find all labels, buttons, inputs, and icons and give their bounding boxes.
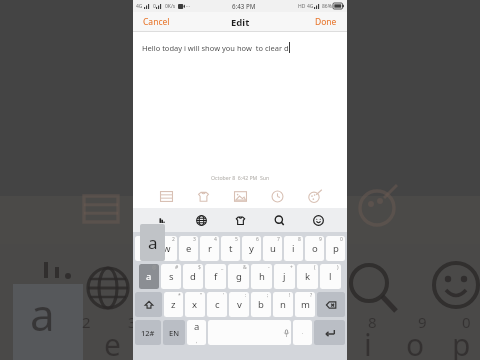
button[interactable]: Search [269,210,289,230]
staticText: a [194,320,200,333]
staticText: @ [152,264,157,271]
button[interactable]: x [185,292,205,317]
staticText: $ [198,264,201,271]
staticText: l [329,270,332,283]
staticText: 2 [172,236,175,243]
button[interactable]: f [205,264,226,289]
button[interactable]: e [179,236,198,261]
staticText: e [104,324,121,360]
staticText: f [214,270,218,283]
staticText: 5 [235,236,238,243]
staticText: z [171,298,176,311]
staticText: t [229,242,233,255]
staticText: + [290,264,293,271]
button[interactable]: Draw [305,187,323,205]
button[interactable]: k [297,264,318,289]
staticText: Hello today i will show you how to clear… [142,43,289,53]
staticText: ) [337,264,339,271]
staticText: x [192,298,198,311]
staticText: * [178,292,181,299]
button[interactable]: z [164,292,183,317]
button[interactable]: j [274,264,295,289]
staticText: ? [310,292,313,299]
staticText: ; [267,292,269,299]
staticText: i [292,242,295,255]
staticText: 7 [277,236,280,243]
staticText: i [364,324,372,360]
staticText: a [30,284,55,344]
button[interactable]: Language [191,210,211,230]
button[interactable]: Backspace [317,292,345,317]
staticText: 1 [150,236,153,243]
staticText: 3 [128,312,137,332]
staticText: 4 [214,236,217,243]
staticText: EN [169,328,179,338]
button[interactable]: 12# [135,320,161,345]
staticText: 9 [319,236,322,243]
button[interactable]: . [293,320,312,345]
staticText: o [406,324,425,360]
button[interactable]: h [251,264,272,289]
staticText: p [333,242,339,255]
button[interactable]: Reminder [268,187,286,205]
button[interactable]: Cancel [139,12,174,32]
button[interactable]: Theme [230,210,250,230]
staticText: j [283,270,286,283]
button[interactable]: Emoji [308,210,328,230]
button[interactable]: Clipboard [152,210,172,230]
button[interactable]: d [183,264,203,289]
staticText: b [258,298,264,311]
staticText: 8 [368,312,377,332]
button[interactable]: n [273,292,293,317]
button[interactable]: Style [194,187,212,205]
button[interactable]: r [200,236,219,261]
button[interactable]: Done [311,12,341,32]
staticText: HD [298,3,306,10]
staticText: 12# [141,328,155,338]
staticText: 9 [418,312,427,332]
button[interactable]: s [161,264,181,289]
staticText: 0 [462,312,471,332]
staticText: _ [221,264,224,271]
button[interactable]: y [242,236,261,261]
staticText: u [270,242,276,255]
staticText: h [259,270,265,283]
staticText: a [148,231,158,254]
staticText: 3 [193,236,196,243]
button[interactable]: v [229,292,249,317]
button[interactable]: g [228,264,249,289]
button[interactable]: q [135,236,155,261]
staticText: r [208,242,212,255]
button[interactable]: Enter [314,320,345,345]
button[interactable]: Space [208,320,291,345]
button[interactable]: EN [163,320,185,345]
button[interactable]: Shift [135,292,162,317]
staticText: c [215,298,220,311]
button[interactable]: a [139,264,159,289]
staticText: Done [315,16,337,28]
button[interactable]: w [157,236,177,261]
button[interactable]: t [221,236,240,261]
staticText: m [301,298,310,311]
button[interactable]: a [187,320,206,345]
button[interactable]: u [263,236,282,261]
button[interactable]: c [207,292,227,317]
staticText: 4G [307,3,314,10]
button[interactable]: l [320,264,341,289]
staticText: October 8 6:42 PM Sun [211,174,270,181]
staticText: g [236,270,242,283]
staticText: . [302,329,304,336]
button[interactable]: m [295,292,315,317]
staticText: e [186,242,192,255]
staticText: v [237,298,242,311]
button[interactable]: b [251,292,271,317]
staticText: # [175,264,179,271]
staticText: 86% [322,3,332,10]
button[interactable]: o [305,236,324,261]
button[interactable]: p [326,236,345,261]
button[interactable]: Checklist [157,187,175,205]
button[interactable]: Insert image [231,187,249,205]
button[interactable]: i [284,236,303,261]
staticText: 6 [256,236,259,243]
staticText: ' [223,292,225,299]
